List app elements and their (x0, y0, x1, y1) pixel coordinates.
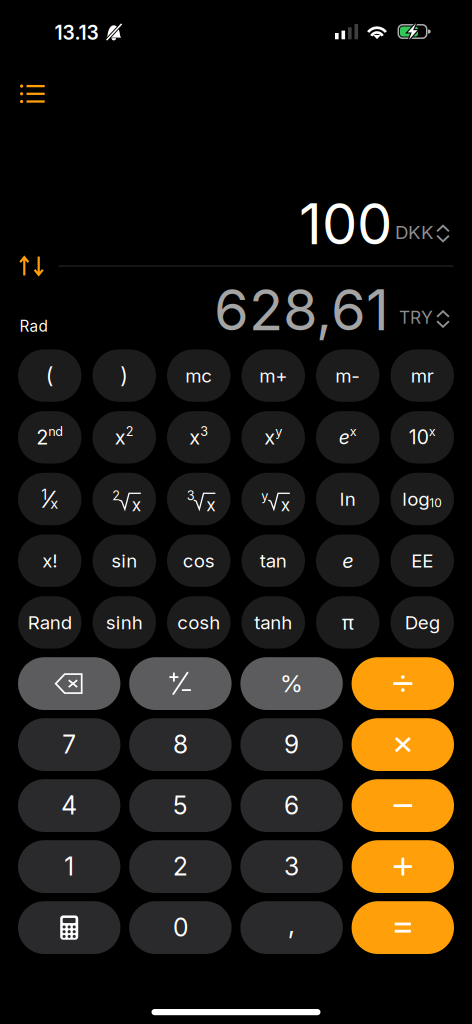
button[interactable]: Delete (18, 657, 120, 710)
button[interactable]: Change target currency (432, 306, 454, 332)
staticText: x (281, 494, 290, 515)
staticText: x (189, 425, 200, 449)
staticText: cosh (177, 611, 220, 634)
staticText: e (339, 426, 350, 449)
staticText: x (264, 425, 275, 449)
button[interactable]: sinh (92, 596, 156, 649)
staticText: sinh (106, 611, 143, 634)
staticText: Rad (19, 317, 47, 336)
button[interactable]: log (390, 473, 454, 525)
staticText: 2 (126, 424, 134, 439)
button[interactable]: 3 (240, 840, 343, 893)
staticText: ( (46, 363, 54, 388)
button[interactable]: 0 (129, 901, 232, 954)
button[interactable]: sin (92, 534, 156, 587)
button[interactable]: tanh (241, 596, 305, 649)
button[interactable]: 6 (240, 779, 343, 832)
button[interactable]: ) (92, 349, 156, 402)
staticText: 2 (36, 425, 48, 449)
button[interactable]: Add (352, 840, 454, 893)
button[interactable]: x (167, 411, 230, 463)
staticText: 628,61 (214, 276, 389, 344)
staticText: , (288, 908, 295, 941)
button[interactable]: 1 (18, 473, 81, 525)
button[interactable]: π (316, 596, 379, 649)
button[interactable]: 5 (129, 779, 232, 832)
staticText: tanh (254, 611, 292, 634)
button[interactable]: y (241, 473, 305, 525)
button[interactable]: cos (167, 534, 230, 587)
button[interactable]: ln (316, 473, 379, 525)
staticText: DKK (395, 221, 434, 244)
button[interactable]: EE (390, 534, 454, 587)
button[interactable]: mc (167, 349, 230, 402)
staticText: 13.13 (54, 21, 98, 44)
button[interactable]: 3 (167, 473, 230, 525)
staticText: x (115, 425, 126, 449)
staticText: ln (340, 488, 356, 510)
staticText: x (429, 424, 436, 439)
button[interactable]: Basic keypad (18, 901, 120, 954)
button[interactable]: 7 (18, 718, 120, 771)
button[interactable]: Deg (390, 596, 454, 649)
staticText: 7 (62, 730, 76, 759)
staticText: x (206, 494, 215, 515)
button[interactable]: Swap currencies (9, 246, 53, 286)
staticText: 100 (299, 190, 392, 258)
staticText: 3 (200, 424, 208, 439)
button[interactable]: History (10, 71, 54, 115)
staticText: EE (411, 549, 433, 572)
staticText: x! (42, 549, 57, 572)
button[interactable]: m+ (241, 349, 305, 402)
button[interactable]: tan (241, 534, 305, 587)
button[interactable]: Multiply (352, 718, 454, 771)
staticText: 1 (41, 486, 47, 503)
button[interactable]: 2 (18, 411, 81, 463)
staticText: y (275, 424, 282, 439)
button[interactable]: x (241, 411, 305, 463)
staticText: e (342, 549, 353, 573)
button[interactable]: Divide (352, 657, 454, 710)
staticText: x (50, 495, 58, 512)
staticText: 10 (429, 496, 442, 510)
button[interactable]: Change source currency (432, 220, 454, 246)
button[interactable]: e (316, 411, 379, 463)
staticText: 8 (173, 730, 188, 759)
staticText: cos (183, 549, 215, 572)
button[interactable]: ( (18, 349, 81, 402)
staticText: ⁄ (47, 484, 51, 513)
button[interactable]: x! (18, 534, 81, 587)
staticText: mc (185, 364, 212, 387)
button[interactable]: 1 (18, 840, 120, 893)
staticText: 2 (173, 852, 188, 881)
staticText: 3 (187, 488, 195, 503)
button[interactable]: mr (390, 349, 454, 402)
staticText: 9 (284, 730, 299, 759)
button[interactable]: Toggle sign (129, 657, 232, 710)
button[interactable]: Rand (18, 596, 81, 649)
staticText: 2 (112, 488, 120, 503)
button[interactable]: cosh (167, 596, 230, 649)
staticText: y (261, 488, 268, 503)
staticText: Rand (28, 611, 72, 634)
button[interactable]: m- (316, 349, 379, 402)
button[interactable]: 9 (240, 718, 343, 771)
staticText: 10 (409, 426, 429, 449)
button[interactable]: , (240, 901, 343, 954)
button[interactable]: % (240, 657, 343, 710)
staticText: x (132, 494, 141, 515)
button[interactable]: Subtract (352, 779, 454, 832)
button[interactable]: x (92, 411, 156, 463)
button[interactable]: 2 (92, 473, 156, 525)
button[interactable]: 8 (129, 718, 232, 771)
staticText: 5 (173, 791, 188, 820)
button[interactable]: Equals (352, 901, 454, 954)
staticText: m+ (259, 364, 287, 387)
staticText: 4 (61, 791, 77, 820)
button[interactable]: e (316, 534, 379, 587)
button[interactable]: 2 (129, 840, 232, 893)
staticText: 3 (284, 852, 299, 881)
staticText: log (402, 488, 429, 510)
button[interactable]: 10 (390, 411, 454, 463)
button[interactable]: 4 (18, 779, 120, 832)
